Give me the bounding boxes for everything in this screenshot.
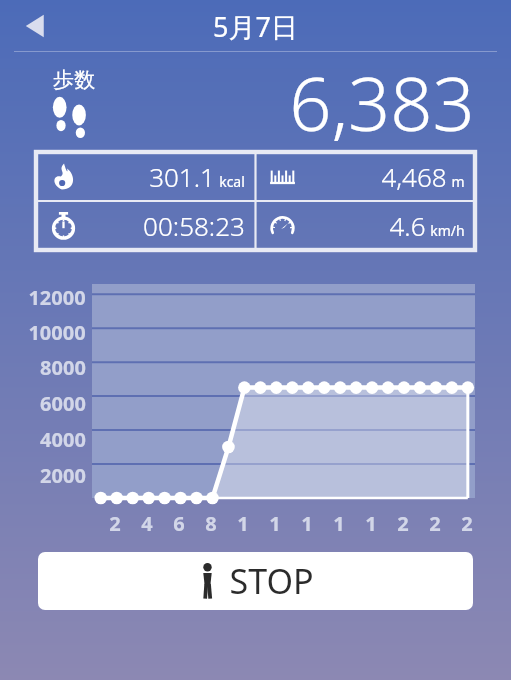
staticText: 10000 [28, 319, 86, 346]
staticText: 10 [235, 510, 251, 538]
staticText: 6 [173, 510, 185, 537]
staticText: 301.1 [149, 159, 215, 194]
staticText: kcal [219, 172, 245, 191]
staticText: 2000 [40, 462, 86, 489]
button[interactable]: 301.1 [36, 152, 255, 201]
staticText: 歩数 [53, 67, 95, 93]
staticText: STOP [229, 558, 314, 604]
staticText: 18 [363, 510, 379, 538]
staticText: 6000 [40, 390, 86, 417]
staticText: 4,468 [381, 159, 447, 194]
staticText: 8000 [40, 354, 86, 381]
button[interactable]: STOP [38, 552, 473, 610]
staticText: 24 [459, 510, 475, 538]
staticText: 4.6 [389, 208, 426, 243]
staticText: 12 [267, 510, 283, 538]
staticText: km/h [430, 221, 465, 240]
button[interactable]: 4.6 [255, 201, 475, 250]
staticText: 2 [109, 510, 121, 537]
staticText: 20 [395, 510, 411, 538]
staticText: 00:58:23 [143, 208, 245, 243]
staticText: 5月7日 [213, 8, 298, 45]
button[interactable]: 00:58:23 [36, 201, 255, 250]
staticText: 6,383 [289, 52, 475, 152]
staticText: 4000 [40, 426, 86, 453]
staticText: 14 [299, 510, 315, 538]
staticText: 16 [331, 510, 347, 538]
staticText: 12000 [28, 284, 86, 311]
staticText: m [451, 172, 465, 191]
staticText: 22 [427, 510, 443, 538]
button[interactable]: 4,468 [255, 152, 475, 201]
staticText: 8 [205, 510, 217, 537]
staticText: 4 [141, 510, 153, 537]
button[interactable]: Back [14, 3, 60, 49]
